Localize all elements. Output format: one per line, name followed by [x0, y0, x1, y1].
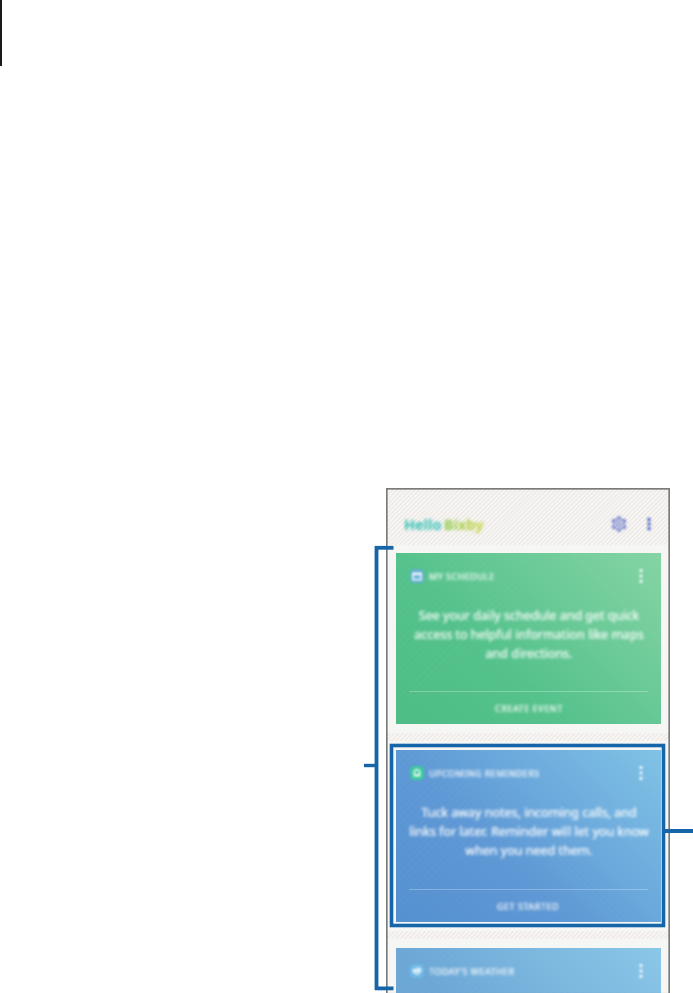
button[interactable]: GET STARTED	[396, 890, 661, 922]
button[interactable]: More options	[637, 512, 661, 536]
staticText: Bixby	[444, 514, 484, 534]
staticText: GET STARTED	[497, 900, 560, 912]
staticText: See your daily schedule and get quick ac…	[409, 607, 649, 662]
button[interactable]: Card options	[631, 566, 651, 586]
button[interactable]: Card options	[631, 763, 651, 783]
button[interactable]: Card options	[631, 961, 651, 981]
button[interactable]: UPCOMING REMINDERS	[396, 750, 661, 922]
staticText: Tuck away notes, incoming calls, and lin…	[409, 804, 649, 859]
staticText: Hello	[404, 514, 442, 534]
button[interactable]: MY SCHEDULE	[396, 553, 661, 724]
staticText: MY SCHEDULE	[429, 570, 495, 582]
button[interactable]: CREATE EVENT	[396, 692, 661, 724]
staticText: UPCOMING REMINDERS	[429, 767, 540, 779]
button[interactable]: TODAY'S WEATHER	[396, 948, 661, 993]
staticText: CREATE EVENT	[495, 702, 563, 714]
staticText: TODAY'S WEATHER	[429, 965, 515, 977]
button[interactable]: Settings	[605, 510, 633, 538]
